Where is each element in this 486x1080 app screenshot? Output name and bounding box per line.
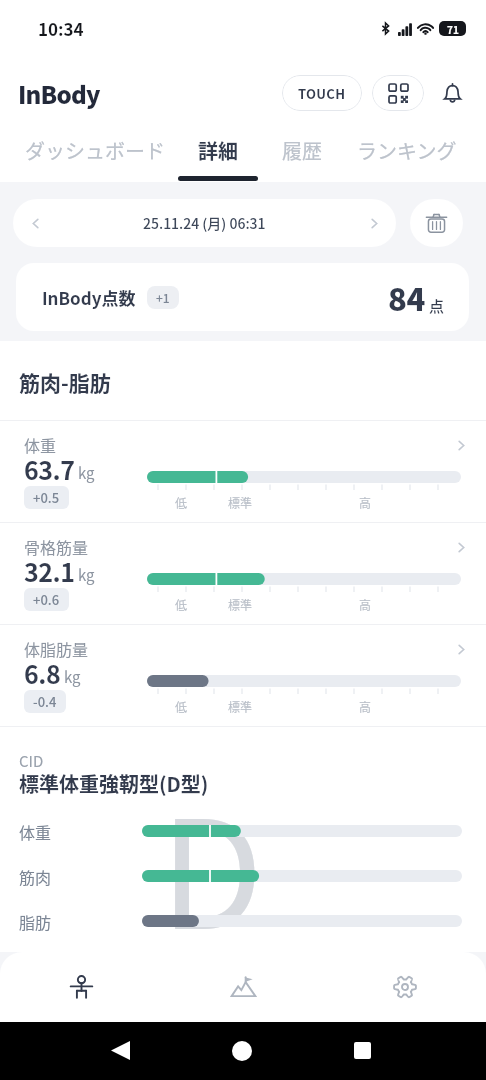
staticText: +1 [156, 289, 170, 306]
button[interactable]: Settings [324, 952, 486, 1022]
button[interactable]: 履歴 [0, 129, 486, 182]
button[interactable]: Goals [162, 952, 324, 1022]
staticText: kg [64, 666, 81, 688]
button[interactable]: Home [0, 1022, 486, 1080]
button[interactable]: InBody点数 [16, 263, 469, 331]
staticText: 低 [175, 596, 188, 613]
staticText: InBody [18, 76, 100, 111]
staticText: -0.4 [33, 692, 57, 711]
staticText: 標準体重強靭型(D型) [19, 769, 209, 798]
staticText: +0.5 [33, 488, 60, 507]
button[interactable]: ランキング [0, 129, 486, 182]
staticText: kg [78, 564, 95, 586]
staticText: 高 [359, 596, 372, 613]
button[interactable]: 25.11.24 (月) 06:31 [13, 199, 396, 247]
staticText: 25.11.24 (月) 06:31 [143, 213, 266, 233]
button[interactable]: TOUCH [282, 75, 362, 111]
button[interactable]: 骨格筋量 [0, 523, 486, 625]
button[interactable]: 体脂肪量 [0, 625, 486, 727]
staticText: 標準 [228, 494, 253, 511]
staticText: ランキング [357, 136, 457, 165]
button[interactable]: Previous [13, 201, 57, 245]
staticText: 点 [429, 295, 445, 317]
staticText: 詳細 [198, 136, 238, 165]
button[interactable]: Recents [0, 1022, 486, 1080]
staticText: 体重 [24, 433, 57, 456]
button[interactable]: Body [0, 952, 162, 1022]
staticText: 標準 [228, 596, 253, 613]
staticText: 32.1 [24, 553, 75, 589]
staticText: 84 [388, 275, 425, 320]
staticText: 筋肉-脂肪 [19, 367, 111, 397]
staticText: ダッシュボード [25, 136, 165, 165]
staticText: 体重 [19, 820, 52, 843]
staticText: D [160, 755, 264, 972]
button[interactable]: Delete [410, 199, 463, 247]
button[interactable]: QR code [372, 75, 424, 111]
staticText: 脂肪 [19, 910, 52, 933]
staticText: kg [78, 462, 95, 484]
staticText: 71 [447, 22, 459, 36]
staticText: 63.7 [24, 451, 75, 487]
button[interactable]: Back [0, 1022, 486, 1080]
staticText: 履歴 [282, 136, 322, 165]
staticText: 低 [175, 494, 188, 511]
staticText: 高 [359, 698, 372, 715]
button[interactable]: ダッシュボード [0, 129, 486, 182]
staticText: 筋肉 [19, 865, 52, 888]
staticText: 6.8 [24, 655, 61, 691]
button[interactable]: 体重 [0, 421, 486, 523]
staticText: CID [19, 750, 44, 772]
staticText: 体脂肪量 [24, 637, 89, 660]
staticText: 骨格筋量 [24, 535, 89, 558]
button[interactable]: Next [352, 201, 396, 245]
button[interactable]: Notifications [434, 75, 470, 111]
staticText: 10:34 [38, 16, 84, 41]
staticText: TOUCH [298, 84, 346, 103]
staticText: InBody点数 [42, 285, 136, 310]
button[interactable]: 詳細 [0, 129, 486, 182]
staticText: +0.6 [33, 590, 60, 609]
staticText: 低 [175, 698, 188, 715]
staticText: 高 [359, 494, 372, 511]
staticText: 標準 [228, 698, 253, 715]
